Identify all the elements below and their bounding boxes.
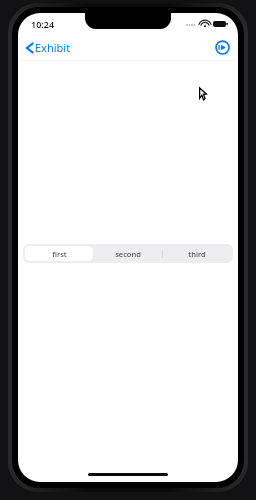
button[interactable]: first xyxy=(25,246,93,261)
staticText: third xyxy=(188,249,206,259)
button[interactable]: Play xyxy=(213,38,232,57)
staticText: Exhibit xyxy=(35,40,71,55)
button[interactable]: third xyxy=(162,246,231,261)
staticText: second xyxy=(115,249,141,259)
staticText: 10:24 xyxy=(31,18,55,30)
staticText: first xyxy=(52,249,67,259)
button[interactable]: second xyxy=(93,246,162,261)
button[interactable]: Exhibit xyxy=(23,38,74,57)
